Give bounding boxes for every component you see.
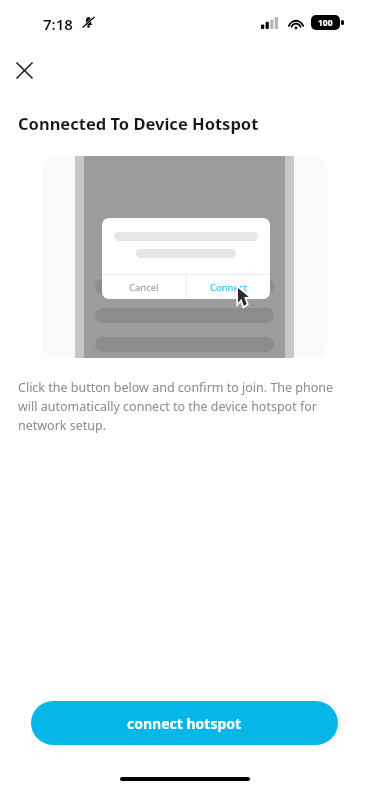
- staticText: Cancel: [129, 281, 159, 294]
- staticText: 100: [318, 17, 333, 29]
- button[interactable]: Close: [9, 55, 39, 85]
- staticText: Click the button below and confirm to jo…: [18, 379, 344, 434]
- staticText: connect hotspot: [127, 714, 242, 733]
- button[interactable]: Connect: [187, 275, 270, 299]
- staticText: 7:18: [43, 14, 73, 34]
- button[interactable]: Cancel: [102, 275, 186, 299]
- staticText: Connected To Device Hotspot: [18, 112, 259, 134]
- button[interactable]: connect hotspot: [31, 701, 338, 745]
- staticText: Connect: [210, 281, 247, 294]
